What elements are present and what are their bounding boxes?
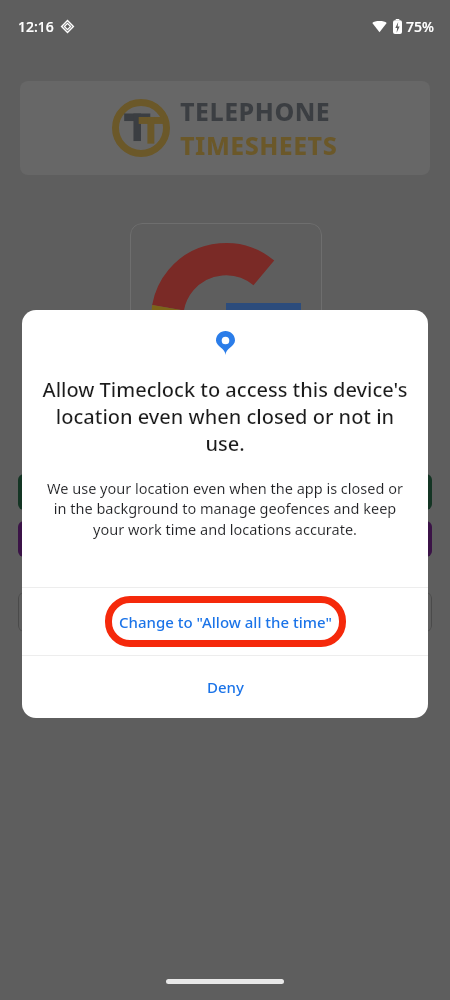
staticText: Change to "Allow all the time"	[119, 612, 332, 632]
staticText: 75%	[406, 17, 434, 36]
staticText: TIMESHEETS	[180, 128, 338, 162]
button[interactable]: Change to "Allow all the time"	[22, 588, 428, 655]
staticText: TELEPHONE	[180, 94, 331, 128]
staticText: We use your location even when the app i…	[43, 478, 407, 540]
staticText: Allow Timeclock to access this device's …	[38, 376, 412, 457]
staticText: Deny	[207, 677, 244, 697]
button[interactable]: Deny	[22, 656, 428, 718]
staticText: 12:16	[18, 17, 54, 36]
